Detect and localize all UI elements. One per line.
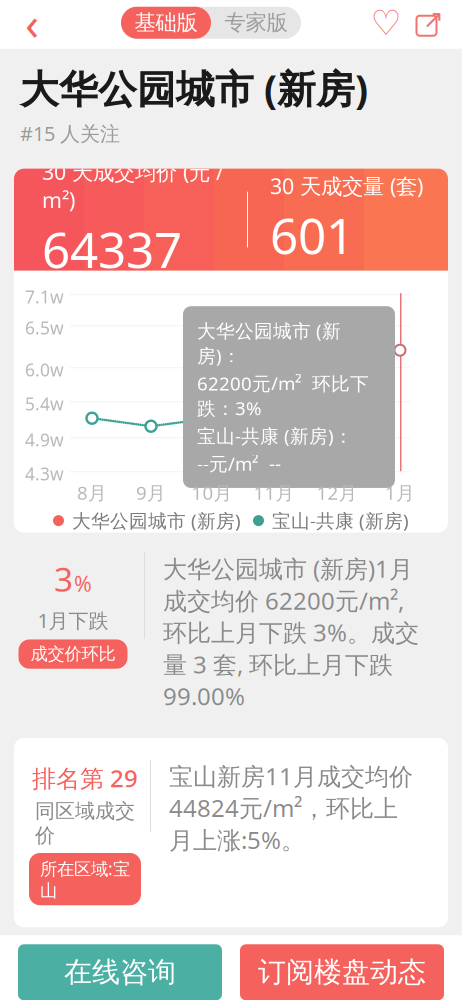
button[interactable]: 在线咨询 [18, 944, 222, 1000]
staticText: 大华公园城市 (新房)1月成交均价 62200元/m², 环比上月下跌 3%。成… [163, 553, 419, 712]
button[interactable]: Back [8, 1, 56, 45]
staticText: 大华公园城市 (新房) [20, 63, 368, 114]
staticText: --元/m² -- [197, 451, 281, 476]
staticText: 7.1w [25, 285, 64, 308]
staticText: 4.3w [25, 462, 64, 485]
staticText: 宝山-共康 (新房)： [197, 423, 353, 448]
staticText: 1月下跌 [37, 607, 108, 633]
staticText: 30 天成交量 (套) [270, 172, 423, 200]
staticText: 在线咨询 [64, 955, 176, 989]
staticText: 8月 [77, 480, 107, 505]
button[interactable]: Favorite [366, 1, 406, 45]
button[interactable]: 基础版 [121, 7, 211, 39]
staticText: 9月 [136, 480, 166, 505]
staticText: 宝山-共康 (新房) [272, 508, 409, 533]
staticText: 同区域成交价 [35, 799, 135, 848]
button[interactable]: 订阅楼盘动态 [240, 944, 444, 1000]
staticText: 3 [54, 557, 73, 601]
staticText: ‹ [25, 0, 39, 53]
staticText: #15 人关注 [20, 120, 120, 147]
staticText: 30 天成交均价 (元 /m²) [42, 157, 224, 214]
staticText: 大华公园城市 (新房)： [197, 318, 341, 368]
staticText: 5.4w [25, 392, 64, 415]
staticText: 11月 [253, 480, 294, 505]
staticText: 成交价环比 [30, 643, 115, 665]
staticText: % [74, 569, 92, 597]
staticText: 6.0w [25, 358, 64, 381]
staticText: 1月 [385, 480, 415, 505]
staticText: 6.5w [25, 316, 64, 339]
staticText: 62200元/m² 环比下跌：3% [197, 371, 369, 420]
button[interactable]: 专家版 [211, 7, 301, 39]
staticText: 所在区域:宝山 [40, 857, 130, 901]
staticText: 排名第 29 [32, 762, 138, 794]
staticText: 基础版 [134, 10, 197, 36]
staticText: 64337 [42, 216, 182, 282]
staticText: ↗ [422, 5, 443, 34]
staticText: 4.9w [25, 428, 64, 451]
staticText: 10月 [191, 480, 232, 505]
staticText: 专家版 [224, 10, 287, 36]
staticText: 订阅楼盘动态 [258, 955, 426, 989]
staticText: 601 [270, 202, 354, 267]
staticText: 12月 [316, 480, 357, 505]
staticText: 宝山新房11月成交均价44824元/m²，环比上月上涨:5%。 [169, 760, 413, 856]
staticText: 大华公园城市 (新房) [72, 508, 241, 533]
button[interactable]: Share [412, 6, 446, 40]
staticText: ♡ [370, 3, 401, 42]
